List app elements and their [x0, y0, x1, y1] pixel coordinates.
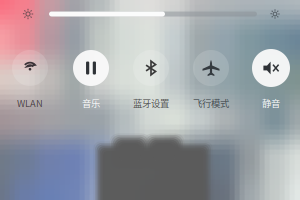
button[interactable]: WLAN [12, 50, 48, 86]
staticText: 蓝牙设置 [133, 96, 169, 110]
staticText: 音乐 [82, 96, 100, 110]
staticText: 飞行模式 [193, 96, 229, 110]
staticText: 静音 [262, 96, 280, 110]
button[interactable]: 音乐 [73, 50, 109, 86]
staticText: WLAN [17, 96, 43, 110]
button[interactable]: 飞行模式 [193, 50, 229, 86]
button[interactable]: 蓝牙设置 [133, 50, 169, 86]
button[interactable]: 静音 [252, 49, 290, 87]
